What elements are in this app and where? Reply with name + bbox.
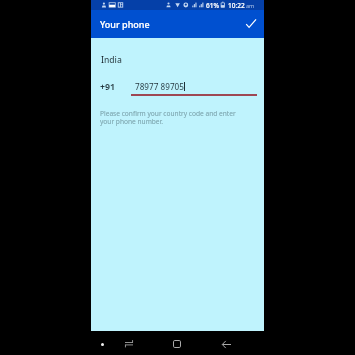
button[interactable]: Back [216, 334, 236, 354]
staticText: Please confirm your country code and ent… [100, 109, 236, 126]
staticText: am [246, 2, 255, 9]
staticText: India [101, 54, 122, 66]
staticText: Your phone [100, 18, 150, 30]
button[interactable]: Switch app [119, 334, 139, 354]
staticText: 10:22 [228, 1, 245, 10]
button[interactable]: Recent apps [167, 334, 187, 354]
button[interactable]: Assistant [92, 334, 112, 354]
staticText: +91 [100, 81, 116, 93]
staticText: 78977 89705 [135, 81, 184, 92]
staticText: 61% [206, 1, 219, 10]
button[interactable]: Confirm [241, 13, 261, 33]
